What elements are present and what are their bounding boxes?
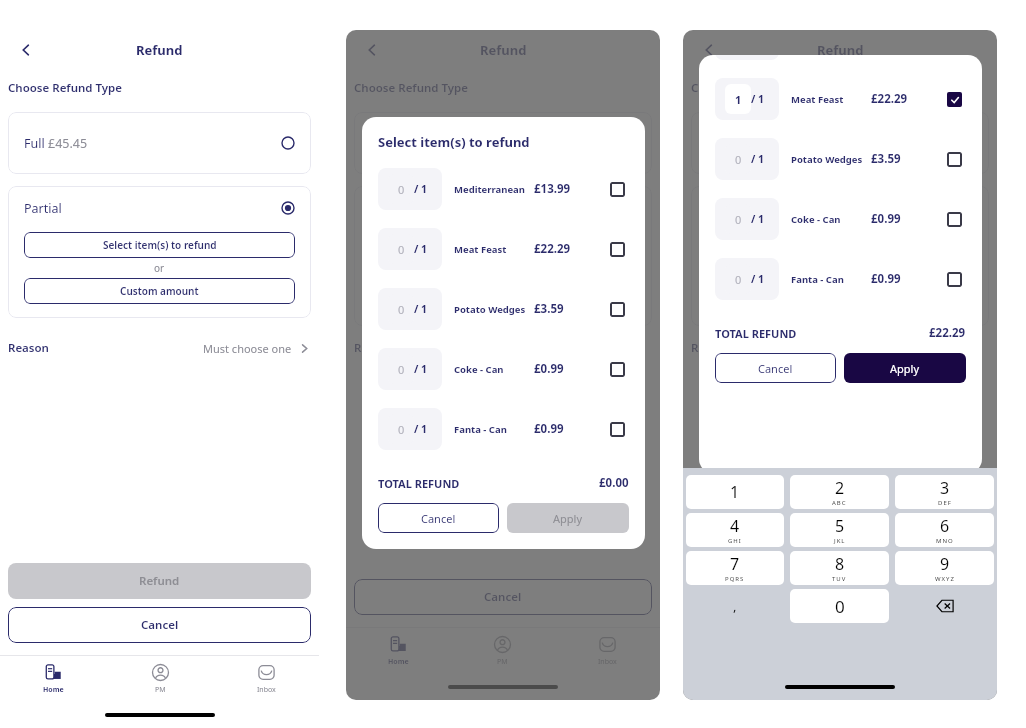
staticText: PM	[497, 657, 508, 667]
staticText: £3.59	[534, 301, 582, 317]
staticText: Refund	[817, 41, 864, 59]
staticText: 0	[398, 422, 405, 437]
button[interactable]: 5	[790, 513, 889, 547]
staticText: Must choose one	[203, 341, 292, 356]
button[interactable]: 0	[715, 129, 966, 189]
button[interactable]: Back	[695, 36, 723, 64]
staticText: / 1	[751, 272, 765, 286]
staticText: 4	[730, 515, 740, 537]
button[interactable]: 0	[378, 279, 629, 339]
staticText: Inbox	[598, 657, 617, 667]
button[interactable]: 4	[686, 513, 784, 547]
button[interactable]: ,	[683, 587, 787, 625]
button[interactable]: Select Meat Feast	[947, 92, 962, 107]
button[interactable]: Full	[8, 112, 311, 174]
button[interactable]: 0	[378, 159, 629, 219]
staticText: 0	[398, 182, 405, 197]
staticText: Refund	[136, 41, 183, 59]
button[interactable]: Cancel	[715, 353, 836, 383]
staticText: £45.45	[48, 135, 88, 152]
button[interactable]: 0	[378, 339, 629, 399]
staticText: Coke - Can	[454, 363, 526, 376]
staticText: £0.99	[534, 421, 582, 437]
staticText: 5	[835, 515, 845, 537]
staticText: 7	[730, 553, 740, 575]
button[interactable]: Select Coke - Can	[610, 362, 625, 377]
staticText: / 1	[414, 182, 428, 196]
button[interactable]: Select Mediterranean	[610, 182, 625, 197]
staticText: 8	[835, 553, 845, 575]
button[interactable]: 6	[895, 513, 994, 547]
button[interactable]: Partial	[24, 186, 295, 230]
staticText: 0	[398, 242, 405, 257]
button[interactable]: Select Potato Wedges	[947, 152, 962, 167]
button[interactable]: PM	[450, 628, 555, 674]
staticText: £0.99	[534, 361, 582, 377]
staticText: Fanta - Can	[454, 423, 526, 436]
button[interactable]: PM	[107, 656, 213, 702]
button[interactable]: 3	[895, 475, 994, 509]
button[interactable]: Apply	[507, 503, 629, 533]
button[interactable]: 0	[378, 399, 629, 459]
button[interactable]: 0	[715, 55, 966, 69]
button[interactable]: Reason	[0, 332, 319, 364]
button[interactable]: 0	[790, 589, 889, 623]
staticText: Reason	[354, 340, 395, 356]
button[interactable]: 9	[895, 551, 994, 585]
staticText: Choose Refund Type	[8, 80, 123, 96]
staticText: Cancel	[484, 589, 522, 605]
staticText: Partial	[24, 200, 62, 217]
staticText: £0.99	[871, 211, 919, 227]
staticText: TOTAL REFUND	[378, 476, 460, 491]
staticText: Potato Wedges	[791, 153, 863, 166]
staticText: / 1	[414, 422, 428, 436]
button[interactable]: 8	[790, 551, 889, 585]
staticText: Meat Feast	[454, 243, 526, 256]
staticText: 1	[730, 481, 740, 503]
button[interactable]: Select item(s) to refund	[24, 232, 295, 258]
staticText: 1	[735, 92, 742, 107]
staticText: 0	[735, 212, 742, 227]
staticText: 3	[940, 477, 950, 499]
staticText: 2	[835, 477, 845, 499]
staticText: Coke - Can	[791, 213, 863, 226]
button[interactable]: Select Meat Feast	[610, 242, 625, 257]
button[interactable]: Backspace	[892, 587, 997, 625]
button[interactable]: Select Fanta - Can	[947, 272, 962, 287]
staticText: / 1	[414, 242, 428, 256]
button[interactable]: Inbox	[213, 656, 319, 702]
button[interactable]: Apply	[844, 353, 966, 383]
staticText: Choose Refund Type	[691, 80, 806, 96]
button[interactable]: Select Fanta - Can	[610, 422, 625, 437]
button[interactable]: Refund	[8, 563, 311, 599]
staticText: GHI	[728, 537, 742, 545]
button[interactable]: Select Potato Wedges	[610, 302, 625, 317]
button[interactable]: Home	[346, 628, 450, 674]
staticText: 0	[735, 152, 742, 167]
staticText: £3.59	[871, 151, 919, 167]
staticText: PQRS	[725, 575, 745, 583]
button[interactable]: Select Coke - Can	[947, 212, 962, 227]
staticText: TUV	[832, 575, 847, 583]
button[interactable]: 7	[686, 551, 784, 585]
button[interactable]: Back	[358, 36, 386, 64]
staticText: TOTAL REFUND	[715, 326, 797, 341]
button[interactable]: Home	[0, 656, 107, 702]
staticText: Custom amount	[120, 284, 199, 298]
button[interactable]: 0	[715, 189, 966, 249]
staticText: WXYZ	[935, 575, 955, 583]
button[interactable]: Cancel	[378, 503, 499, 533]
button[interactable]: 0	[715, 249, 966, 309]
button[interactable]: 0	[378, 219, 629, 279]
button[interactable]: Custom amount	[24, 278, 295, 304]
button[interactable]: 1	[715, 69, 966, 129]
staticText: Select item(s) to refund	[103, 238, 217, 252]
button[interactable]: 1	[686, 475, 784, 509]
staticText: Meat Feast	[791, 93, 863, 106]
button[interactable]: Back	[12, 36, 40, 64]
staticText: Fanta - Can	[791, 273, 863, 286]
button[interactable]: 2	[790, 475, 889, 509]
button[interactable]: Cancel	[8, 607, 311, 643]
staticText: Choose Refund Type	[354, 80, 469, 96]
